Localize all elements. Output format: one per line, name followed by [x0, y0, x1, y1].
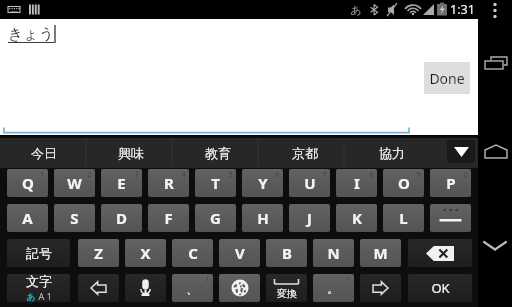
staticText: 記号	[26, 245, 52, 261]
staticText: 京都	[292, 145, 318, 161]
staticText: 1:31	[450, 1, 475, 18]
button[interactable]: U	[289, 169, 330, 197]
button[interactable]: O	[383, 169, 424, 197]
button[interactable]: 教育	[174, 138, 261, 168]
button[interactable]: Next	[360, 274, 401, 302]
button[interactable]: Y	[242, 169, 283, 197]
button[interactable]: OK	[408, 274, 472, 302]
staticText: V	[235, 243, 245, 263]
button[interactable]: Backspace	[408, 239, 472, 267]
button[interactable]: J	[289, 204, 330, 232]
staticText: 教育	[205, 145, 231, 161]
staticText: あ	[26, 291, 36, 302]
button[interactable]: Home	[478, 140, 512, 176]
staticText: A 1	[36, 290, 52, 302]
button[interactable]: Switch language	[219, 274, 260, 302]
staticText: E	[117, 173, 126, 193]
button[interactable]: R	[148, 169, 189, 197]
staticText: 3	[134, 169, 139, 179]
staticText: B	[282, 243, 292, 263]
button[interactable]: 、	[172, 274, 213, 302]
staticText: 。	[327, 280, 340, 296]
staticText: 興味	[118, 145, 144, 161]
button[interactable]: L	[383, 204, 424, 232]
button[interactable]: P	[430, 169, 471, 197]
staticText: O	[398, 173, 410, 193]
button[interactable]: Z	[78, 239, 119, 267]
button[interactable]: Long vowel mark	[430, 204, 471, 232]
staticText: 協力	[379, 145, 405, 161]
button[interactable]: 記号	[7, 239, 70, 267]
staticText: OK	[431, 279, 450, 297]
staticText: !	[206, 274, 209, 284]
button[interactable]: 協力	[348, 138, 435, 168]
button[interactable]: V	[219, 239, 260, 267]
button[interactable]: Recents	[478, 48, 512, 84]
button[interactable]: Q	[7, 169, 48, 197]
button[interactable]: G	[195, 204, 236, 232]
staticText: 1	[40, 169, 45, 179]
button[interactable]: E	[101, 169, 142, 197]
button[interactable]: S	[54, 204, 95, 232]
staticText: Q	[22, 173, 34, 193]
staticText: 変換	[277, 287, 297, 300]
staticText: U	[304, 173, 316, 193]
staticText: 文字	[26, 274, 52, 289]
staticText: S	[70, 208, 79, 228]
button[interactable]: N	[313, 239, 354, 267]
staticText: L	[399, 208, 408, 228]
staticText: T	[211, 173, 220, 193]
button[interactable]: B	[266, 239, 307, 267]
staticText: 4	[181, 169, 186, 179]
button[interactable]: H	[242, 204, 283, 232]
button[interactable]: A	[7, 204, 48, 232]
staticText: 7	[322, 169, 327, 179]
button[interactable]: 今日	[0, 138, 87, 168]
button[interactable]: 文字	[7, 274, 70, 302]
staticText: 2	[87, 169, 92, 179]
button[interactable]: F	[148, 204, 189, 232]
staticText: 8	[369, 169, 374, 179]
staticText: 、	[186, 280, 199, 296]
button[interactable]: M	[360, 239, 401, 267]
staticText: 6	[275, 169, 280, 179]
staticText: 今日	[31, 145, 57, 161]
staticText: 9	[416, 169, 421, 179]
button[interactable]: C	[172, 239, 213, 267]
button[interactable]: More options	[478, 0, 512, 22]
staticText: C	[188, 243, 198, 263]
button[interactable]: Done	[424, 62, 470, 94]
button[interactable]: Convert	[266, 274, 307, 302]
button[interactable]: D	[101, 204, 142, 232]
staticText: Done	[429, 69, 465, 88]
button[interactable]: 京都	[261, 138, 348, 168]
staticText: N	[327, 243, 340, 263]
staticText: 5	[228, 169, 233, 179]
button[interactable]: I	[336, 169, 377, 197]
button[interactable]: Back	[78, 274, 119, 302]
button[interactable]: Back	[478, 228, 512, 264]
staticText: K	[352, 208, 362, 228]
button[interactable]: T	[195, 169, 236, 197]
button[interactable]: Expand candidates	[447, 140, 475, 163]
staticText: ?	[346, 274, 350, 284]
button[interactable]: X	[125, 239, 166, 267]
staticText: X	[140, 243, 151, 263]
staticText: H	[257, 208, 269, 228]
button[interactable]: K	[336, 204, 377, 232]
staticText: R	[164, 173, 174, 193]
button[interactable]: Voice input	[125, 274, 166, 302]
staticText: F	[164, 208, 173, 228]
staticText: D	[116, 208, 127, 228]
staticText: きょう	[8, 25, 55, 44]
staticText: 0	[463, 169, 468, 179]
staticText: W	[67, 173, 82, 193]
staticText: J	[307, 208, 312, 228]
button[interactable]: W	[54, 169, 95, 197]
staticText: G	[210, 208, 221, 228]
button[interactable]: 興味	[87, 138, 174, 168]
staticText: あ	[350, 3, 362, 17]
staticText: P	[446, 173, 456, 193]
staticText: M	[373, 243, 388, 263]
button[interactable]: 。	[313, 274, 354, 302]
